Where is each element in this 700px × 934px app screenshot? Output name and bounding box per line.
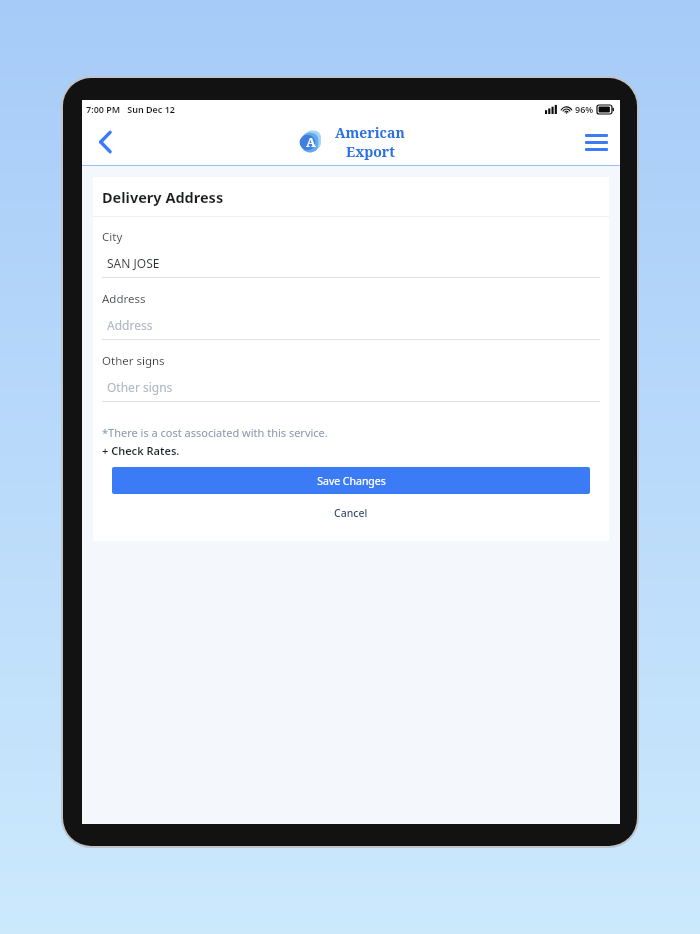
staticText: American	[335, 123, 405, 142]
staticText: City	[102, 229, 123, 245]
button[interactable]: + Check Rates.	[102, 443, 180, 458]
button[interactable]: A	[297, 123, 405, 161]
staticText: Delivery Address	[102, 187, 224, 207]
button[interactable]: Save Changes	[112, 467, 590, 494]
button[interactable]: City	[102, 229, 600, 291]
button[interactable]: Other signs	[102, 353, 600, 415]
staticText: Cancel	[334, 506, 368, 520]
button[interactable]: Address	[102, 291, 600, 353]
button[interactable]: Menu	[578, 124, 614, 160]
staticText: Address	[102, 291, 146, 307]
staticText: Other signs	[102, 353, 165, 369]
staticText: Save Changes	[317, 474, 386, 488]
button[interactable]: Cancel	[102, 506, 600, 520]
staticText: Address	[107, 317, 153, 333]
staticText: *There is a cost associated with this se…	[102, 425, 328, 440]
staticText: Export	[346, 142, 395, 161]
staticText: A	[306, 133, 316, 151]
staticText: Other signs	[107, 379, 173, 395]
staticText: 96%	[575, 103, 594, 115]
staticText: 7:00 PM Sun Dec 12	[86, 103, 175, 115]
staticText: SAN JOSE	[107, 255, 160, 271]
button[interactable]: Back	[88, 125, 122, 159]
